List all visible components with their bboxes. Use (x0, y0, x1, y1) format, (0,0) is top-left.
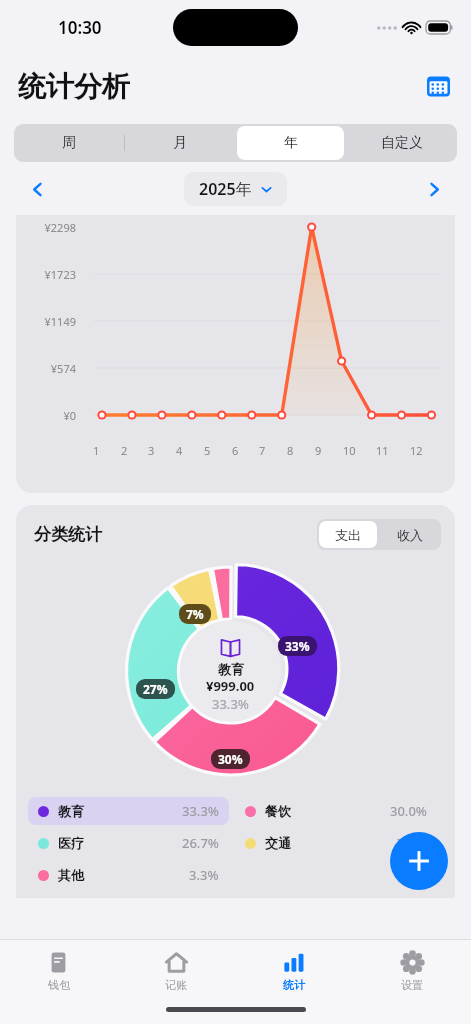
button[interactable]: 月 (124, 124, 235, 162)
staticText: 4 (176, 443, 183, 458)
staticText: 33% (285, 638, 310, 654)
button[interactable]: Previous (22, 174, 52, 204)
staticText: 9 (315, 443, 322, 458)
button[interactable]: 钱包 (0, 951, 117, 992)
staticText: ¥574 (16, 361, 76, 376)
staticText: 26.7% (182, 834, 219, 852)
staticText: 分类统计 (34, 524, 102, 545)
staticText: 餐饮 (265, 803, 291, 819)
staticText: 27% (143, 681, 168, 697)
button[interactable]: 自定义 (346, 124, 457, 162)
button[interactable]: 收入 (379, 519, 441, 550)
staticText: 6 (232, 443, 239, 458)
staticText: 3.3% (189, 866, 219, 884)
staticText: 7.0% (397, 834, 427, 852)
button[interactable]: Add record (390, 832, 448, 890)
staticText: 教育 (58, 803, 84, 819)
button[interactable]: 周 (14, 124, 124, 162)
staticText: 10 (343, 443, 356, 458)
button[interactable]: 设置 (353, 951, 471, 992)
staticText: 30.0% (390, 802, 427, 820)
staticText: 交通 (265, 835, 291, 851)
staticText: ¥999.00 (206, 677, 255, 695)
staticText: 3 (148, 443, 155, 458)
button[interactable]: 医疗 (28, 829, 229, 857)
staticText: 月 (173, 134, 187, 152)
staticText: 收入 (397, 527, 423, 543)
staticText: 7% (186, 606, 204, 622)
button[interactable]: 年 (235, 124, 346, 162)
staticText: 统计分析 (18, 69, 130, 104)
button[interactable]: 2025年 (184, 172, 287, 206)
staticText: 周 (62, 134, 76, 152)
staticText: 12 (410, 443, 423, 458)
button[interactable]: 统计 (235, 951, 353, 992)
staticText: 记账 (165, 978, 187, 992)
staticText: ¥0 (16, 408, 76, 423)
staticText: ¥2298 (16, 220, 76, 235)
staticText: 2025年 (199, 178, 252, 200)
staticText: 自定义 (381, 134, 423, 152)
staticText: 2 (121, 443, 128, 458)
button[interactable]: Calendar (421, 69, 455, 103)
staticText: 钱包 (48, 978, 70, 992)
button[interactable]: 其他 (28, 861, 229, 889)
staticText: 30% (218, 751, 243, 767)
staticText: ¥1723 (16, 267, 76, 282)
button[interactable]: 餐饮 (235, 797, 437, 825)
staticText: 设置 (401, 978, 423, 992)
staticText: 医疗 (58, 835, 84, 851)
staticText: 10:30 (58, 16, 102, 39)
staticText: 11 (376, 443, 389, 458)
staticText: 8 (287, 443, 294, 458)
button[interactable]: 记账 (117, 951, 235, 992)
staticText: 统计 (283, 978, 305, 992)
button[interactable]: 支出 (317, 519, 379, 550)
staticText: 其他 (58, 867, 84, 883)
staticText: 支出 (335, 527, 361, 543)
button[interactable]: Next (419, 174, 449, 204)
button[interactable]: ¥2298 (16, 215, 455, 493)
staticText: 教育 (218, 661, 244, 677)
staticText: 1 (93, 443, 100, 458)
button[interactable]: 交通 (235, 829, 437, 857)
staticText: 33.3% (212, 695, 249, 713)
staticText: 年 (284, 134, 298, 152)
staticText: 7 (259, 443, 266, 458)
staticText: 5 (204, 443, 211, 458)
staticText: ¥1149 (16, 314, 76, 329)
button[interactable]: 教育 (28, 797, 229, 825)
staticText: 33.3% (182, 802, 219, 820)
